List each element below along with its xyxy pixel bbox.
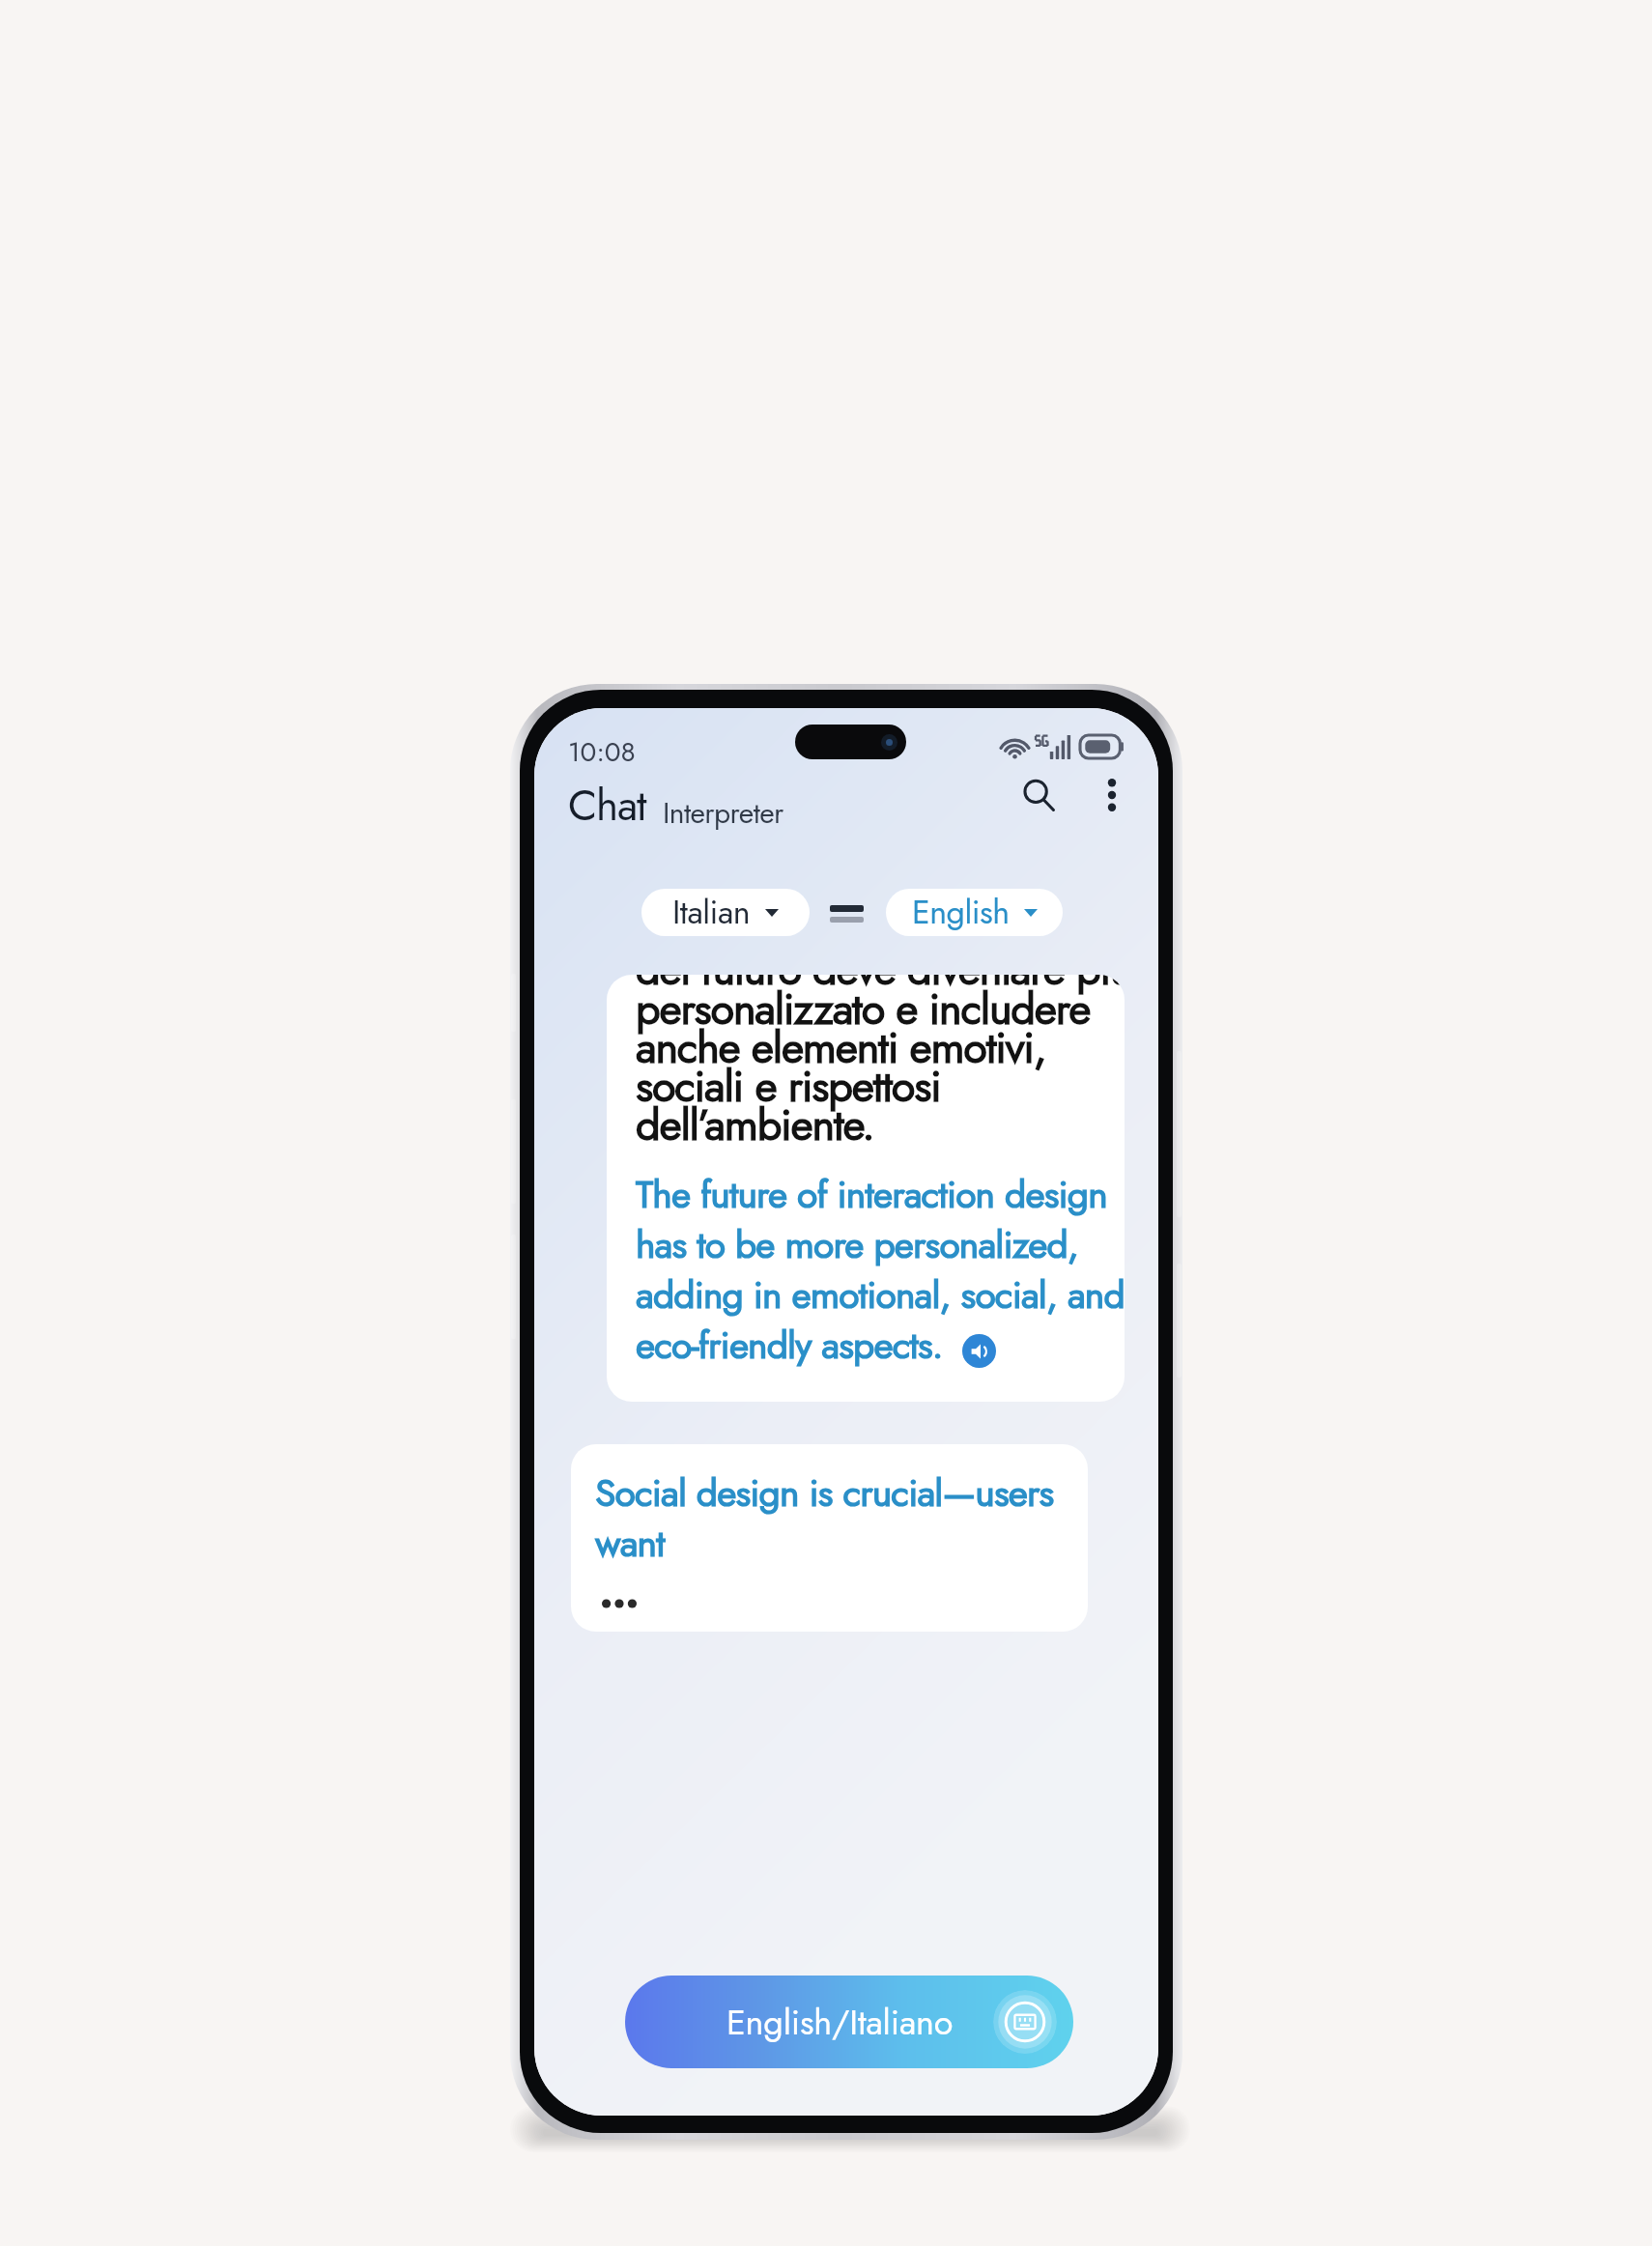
staticText: The future of interaction design has to …: [636, 1170, 1125, 1371]
button[interactable]: English/Italiano: [625, 1976, 1073, 2068]
staticText: Interpreter: [663, 792, 783, 834]
button[interactable]: del futuro deve diventare più personaliz…: [607, 975, 1125, 1402]
staticText: del futuro deve diventare più personaliz…: [636, 975, 1125, 1155]
staticText: Social design is crucial—users want: [595, 1468, 1054, 1569]
staticText: Italian: [672, 889, 751, 936]
button[interactable]: More options: [1089, 772, 1135, 818]
button[interactable]: Italian: [641, 889, 810, 936]
staticText: English: [912, 889, 1010, 936]
button[interactable]: Play audio: [962, 1334, 996, 1368]
staticText: 10:08: [568, 732, 636, 771]
staticText: English/Italiano: [726, 1997, 954, 2047]
button[interactable]: English: [886, 889, 1063, 936]
button[interactable]: Social design is crucial—users want: [571, 1444, 1088, 1632]
button[interactable]: Open keyboard: [993, 1990, 1057, 2054]
button[interactable]: Search: [1015, 772, 1062, 818]
staticText: Chat: [568, 775, 646, 837]
